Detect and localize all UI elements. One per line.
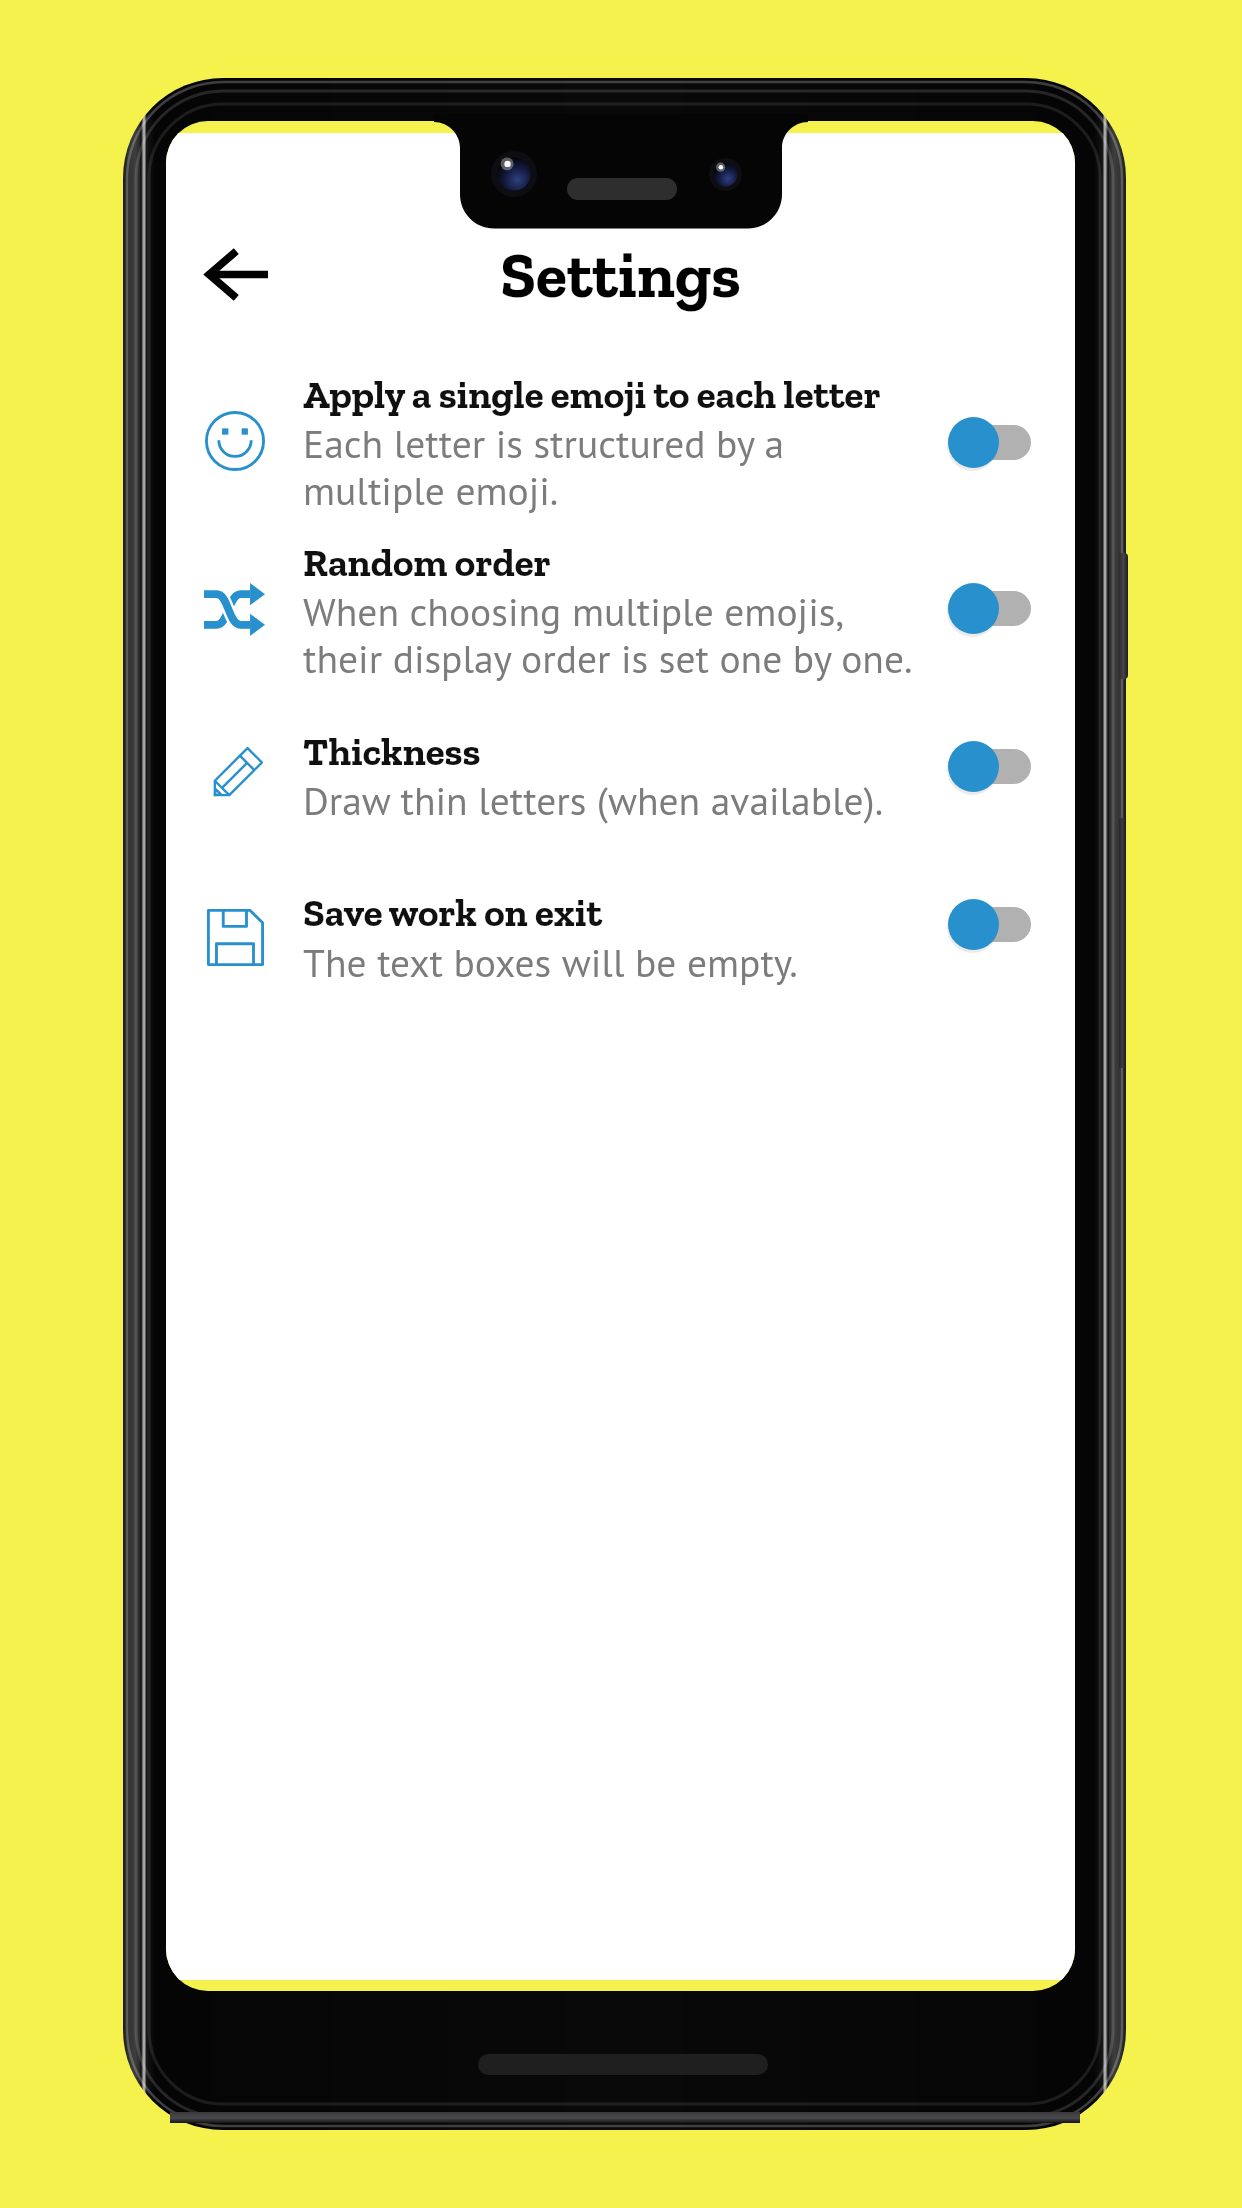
button[interactable]: Back <box>189 232 285 316</box>
button[interactable] <box>186 723 1056 833</box>
button[interactable]: Save work on exit <box>938 887 1041 962</box>
button[interactable] <box>186 883 1056 993</box>
staticText: The text boxes will be empty. <box>303 937 1003 988</box>
staticText: When choosing multiple emojis, their dis… <box>303 586 1003 684</box>
button[interactable] <box>186 373 1056 523</box>
staticText: Draw thin letters (when available). <box>303 775 1003 826</box>
staticText: Thickness <box>303 728 481 775</box>
button[interactable]: Apply a single emoji to each letter <box>938 405 1041 480</box>
staticText: Apply a single emoji to each letter <box>303 371 881 418</box>
button[interactable]: Random order <box>938 571 1041 646</box>
staticText: Save work on exit <box>303 889 602 936</box>
button[interactable]: Thickness <box>938 729 1041 804</box>
staticText: Each letter is structured by a multiple … <box>303 418 1003 516</box>
staticText: Random order <box>303 539 551 586</box>
button[interactable] <box>186 533 1056 683</box>
staticText: Settings <box>166 237 1075 314</box>
